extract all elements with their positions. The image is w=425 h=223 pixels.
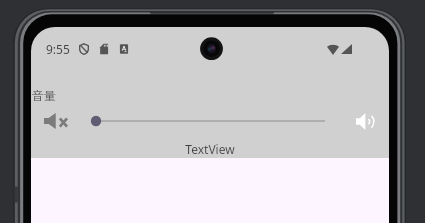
button[interactable]: Volume slider (86, 106, 336, 136)
staticText: TextView (31, 141, 389, 157)
button[interactable]: Mute volume (40, 107, 70, 135)
staticText: 音量 (32, 88, 56, 103)
button[interactable]: Volume up (349, 106, 379, 136)
staticText: 9:55 (46, 41, 70, 57)
